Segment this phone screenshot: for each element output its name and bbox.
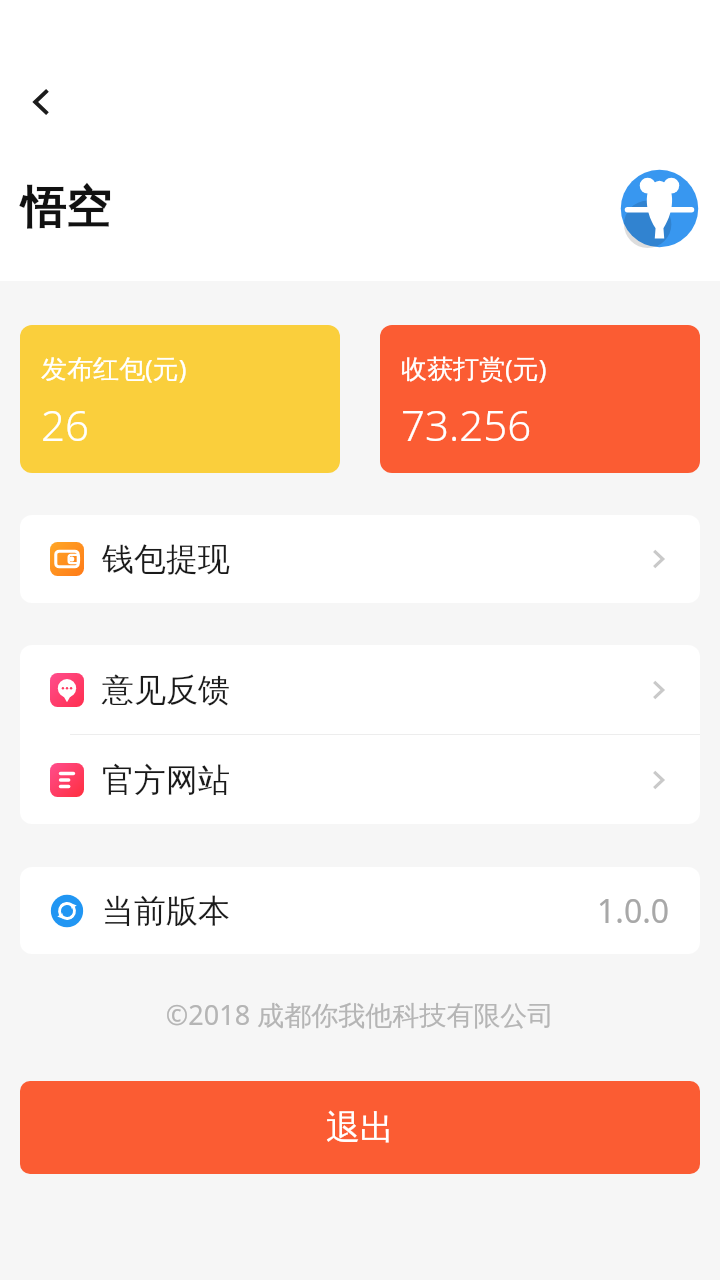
button[interactable]: 收获打赏(元) [380,325,700,473]
button[interactable]: 官方网站 [20,735,700,824]
button[interactable]: Profile avatar [620,169,699,248]
staticText: 当前版本 [102,891,230,931]
staticText: ©2018 成都你我他科技有限公司 [0,996,720,1033]
staticText: 26 [41,396,89,453]
staticText: 1.0.0 [597,889,670,933]
staticText: 意见反馈 [102,670,230,710]
staticText: 悟空 [21,180,111,237]
staticText: 官方网站 [102,760,230,800]
button[interactable]: 发布红包(元) [20,325,340,473]
staticText: 73.256 [401,396,532,453]
button[interactable]: 当前版本 [20,867,700,954]
staticText: 钱包提现 [102,539,230,579]
button[interactable]: Back [12,72,72,132]
staticText: 退出 [326,1106,394,1149]
staticText: 发布红包(元) [41,350,187,386]
button[interactable]: 钱包提现 [20,515,700,603]
button[interactable]: 退出 [20,1081,700,1174]
button[interactable]: 意见反馈 [20,645,700,734]
staticText: 收获打赏(元) [401,350,547,386]
